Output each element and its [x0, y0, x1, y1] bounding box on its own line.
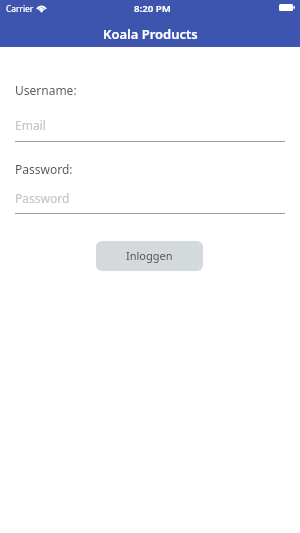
staticText: 8:20 PM	[134, 2, 171, 15]
staticText: Password	[15, 190, 70, 206]
staticText: Koala Products	[103, 25, 198, 43]
button[interactable]: Inloggen	[96, 241, 203, 271]
staticText: Carrier	[6, 3, 34, 14]
staticText: Email	[15, 117, 46, 133]
staticText: Inloggen	[126, 248, 173, 263]
staticText: Password:	[15, 161, 73, 177]
other: Battery full	[279, 4, 295, 11]
staticText: Username:	[15, 82, 77, 98]
button[interactable]: Password	[15, 187, 285, 217]
button[interactable]: Email	[15, 114, 285, 144]
other: Wi-Fi signal	[36, 4, 47, 12]
